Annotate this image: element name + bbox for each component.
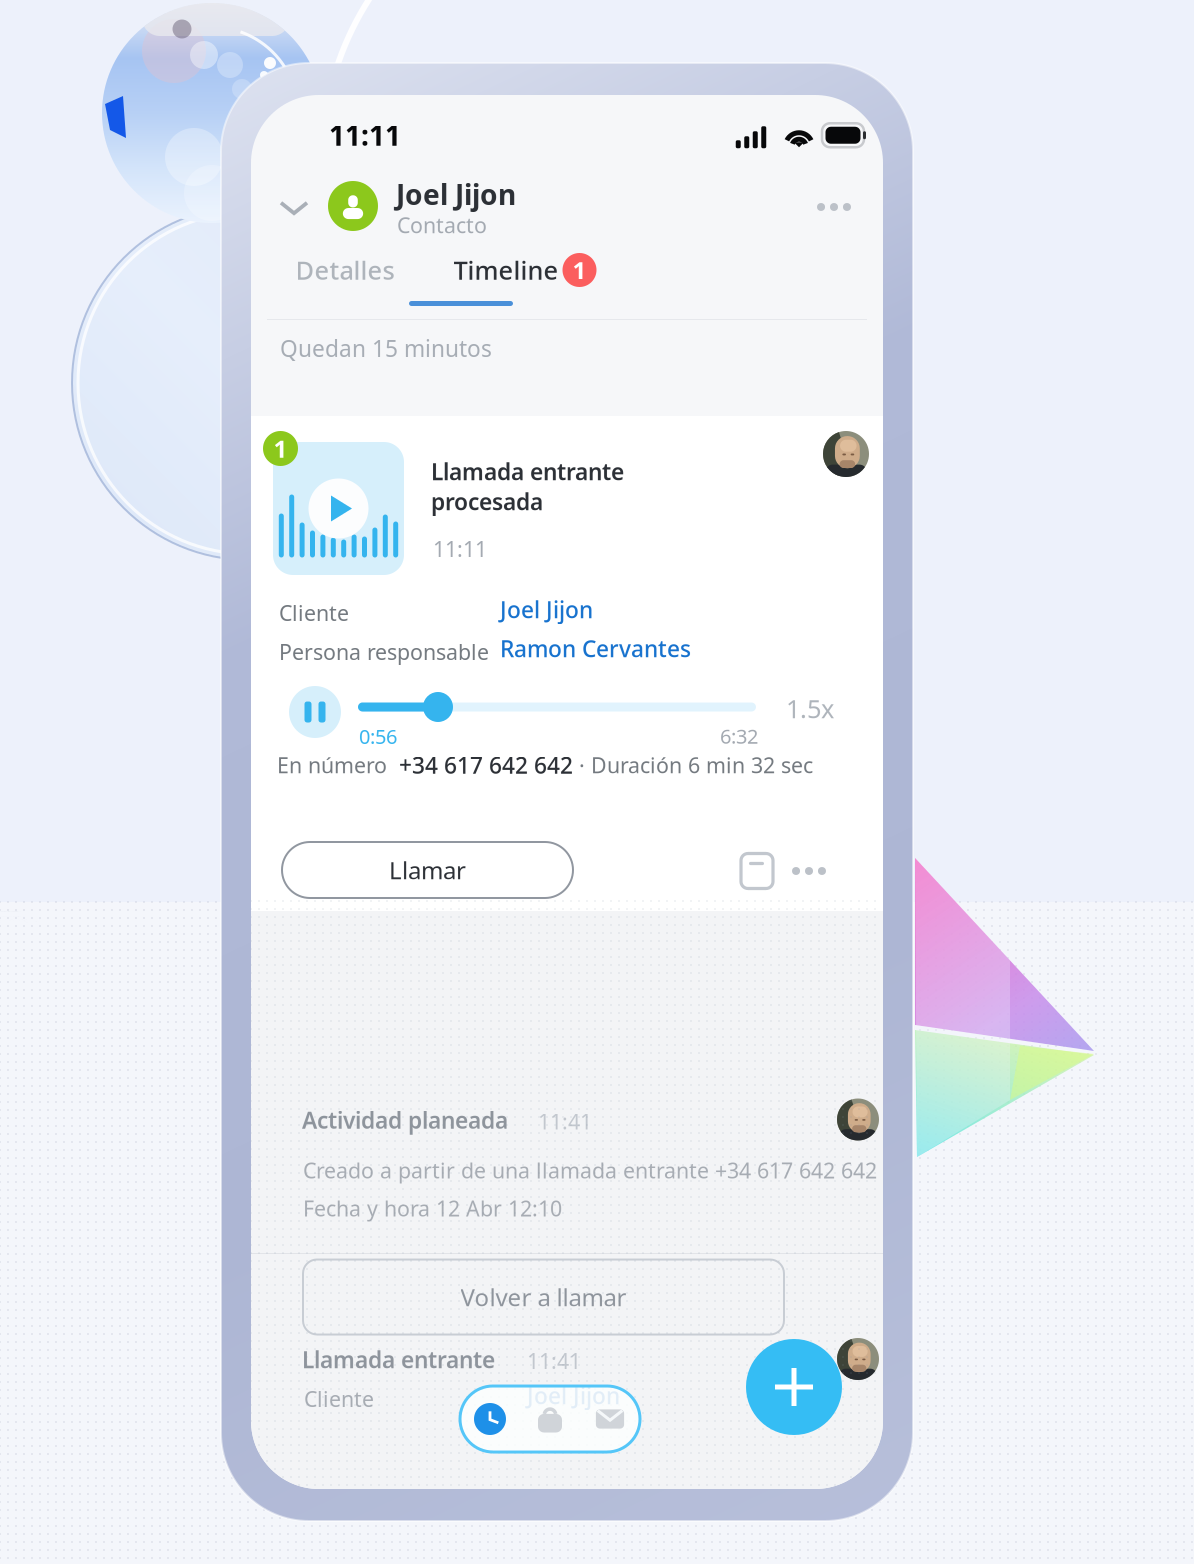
- staticText: 11:11: [329, 116, 401, 154]
- button[interactable]: More: [779, 848, 839, 894]
- staticText: Detalles: [295, 253, 394, 287]
- staticText: Fecha y hora 12 Abr 12:10: [303, 1194, 562, 1222]
- button[interactable]: Llamar: [282, 842, 573, 898]
- staticText: Llamada entrante: [302, 1344, 495, 1374]
- staticText: Joel Jijon: [396, 176, 516, 213]
- staticText: Duración 6 min 32 sec: [591, 751, 813, 779]
- staticText: 1.5x: [786, 691, 834, 725]
- staticText: +34 617 642 642: [399, 750, 573, 780]
- staticText: Joel Jijon: [500, 594, 593, 624]
- button[interactable]: Note: [734, 848, 780, 894]
- staticText: En número: [277, 751, 399, 779]
- button[interactable]: Pause: [289, 686, 341, 738]
- staticText: Llamar: [389, 854, 466, 886]
- button[interactable]: Timeline: [393, 244, 583, 296]
- staticText: 11:41: [538, 1107, 592, 1135]
- staticText: 11:41: [527, 1347, 581, 1375]
- staticText: Joel Jijon: [527, 1380, 620, 1410]
- staticText: Volver a llamar: [460, 1281, 626, 1313]
- button[interactable]: Collapse: [268, 182, 320, 234]
- staticText: Ramon Cervantes: [500, 633, 691, 663]
- button[interactable]: Mail: [580, 1386, 640, 1452]
- staticText: 1: [572, 254, 586, 286]
- button[interactable]: Deals: [520, 1386, 580, 1452]
- staticText: Contacto: [397, 211, 487, 239]
- button[interactable]: Detalles: [262, 244, 392, 296]
- button[interactable]: More options: [800, 183, 868, 231]
- staticText: procesada: [431, 486, 543, 516]
- button[interactable]: Timeline: [460, 1386, 520, 1452]
- staticText: Cliente: [279, 599, 349, 627]
- staticText: Quedan 15 minutos: [280, 333, 492, 363]
- staticText: Actividad planeada: [302, 1105, 508, 1135]
- staticText: 6:32: [720, 723, 758, 749]
- staticText: Llamada entrante: [431, 456, 624, 486]
- staticText: Cliente: [304, 1385, 374, 1413]
- staticText: ·: [573, 751, 591, 779]
- staticText: 0:56: [359, 723, 397, 750]
- staticText: Timeline: [453, 253, 558, 287]
- staticText: Persona responsable: [279, 638, 489, 666]
- button[interactable]: Joel Jijon: [500, 597, 740, 622]
- button[interactable]: Ramon Cervantes: [500, 636, 760, 661]
- staticText: 1: [273, 433, 287, 464]
- button[interactable]: Add: [746, 1339, 842, 1435]
- button[interactable]: Volver a llamar: [303, 1259, 784, 1334]
- staticText: Creado a partir de una llamada entrante …: [303, 1156, 877, 1184]
- staticText: 11:11: [433, 535, 487, 563]
